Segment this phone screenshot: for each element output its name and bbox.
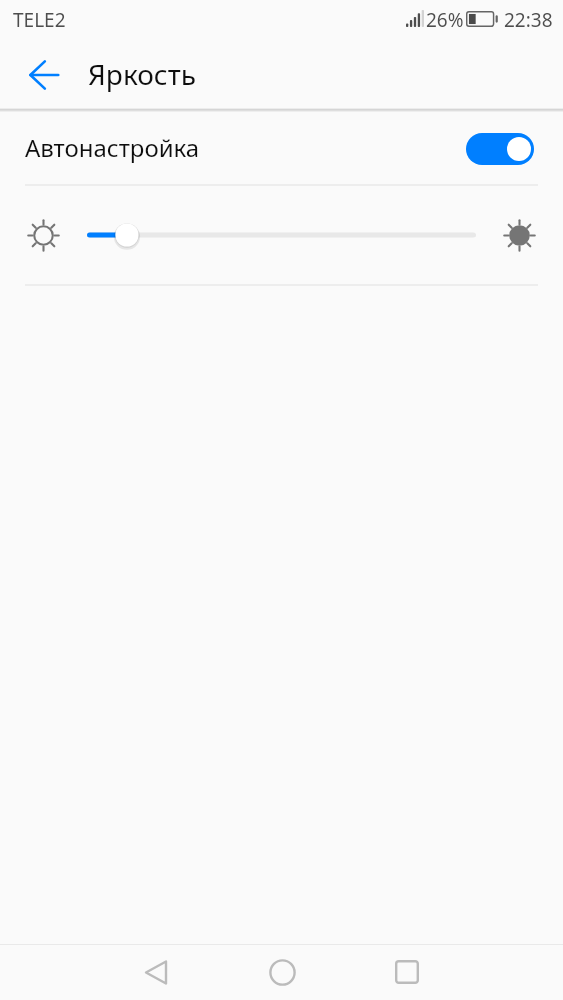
staticText: Яркость — [88, 55, 196, 93]
button[interactable]: Brightness level — [87, 222, 476, 248]
button[interactable]: Home — [244, 945, 320, 1000]
button[interactable]: Auto brightness toggle — [466, 133, 534, 165]
button[interactable]: Minimum brightness — [25, 217, 62, 254]
button[interactable]: Back — [118, 945, 194, 1000]
button[interactable]: Back — [20, 51, 68, 99]
staticText: TELE2 — [13, 7, 66, 33]
button[interactable]: Recent apps — [369, 944, 445, 999]
button[interactable]: Автонастройка — [0, 112, 563, 185]
staticText: 22:38 — [504, 7, 553, 33]
staticText: Автонастройка — [25, 131, 200, 164]
button[interactable]: Maximum brightness — [501, 217, 538, 254]
staticText: 26% — [426, 7, 464, 33]
